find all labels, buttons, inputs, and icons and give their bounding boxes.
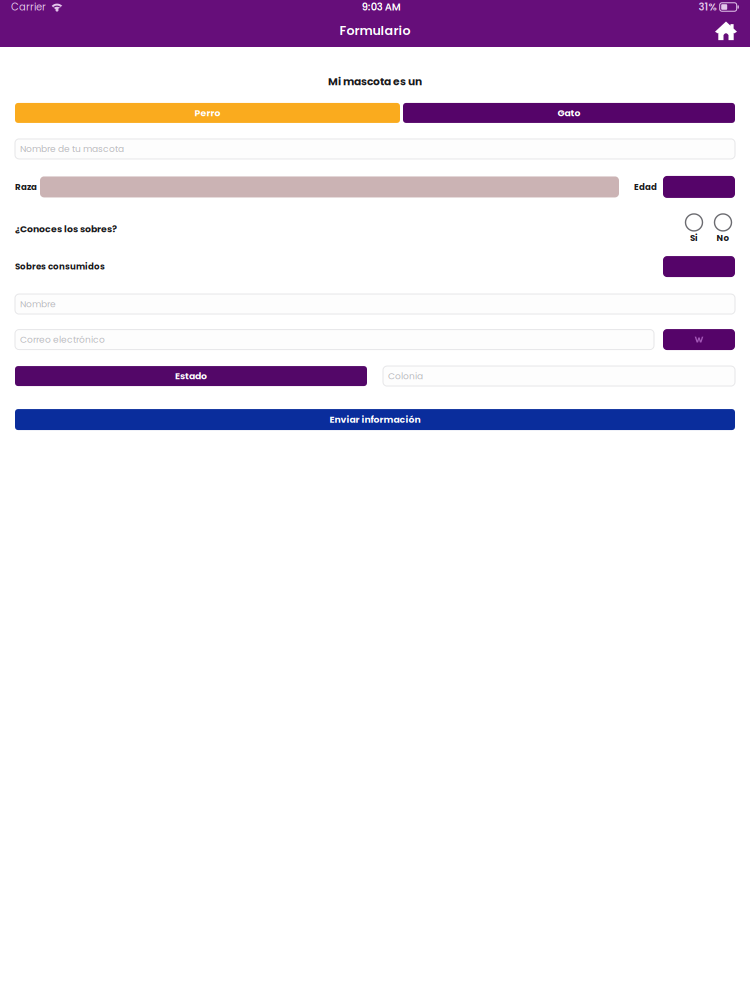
staticText: 9:03 AM bbox=[362, 0, 401, 14]
staticText: Enviar información bbox=[329, 413, 420, 426]
staticText: Correo electrónico bbox=[20, 333, 105, 346]
button[interactable]: Perro bbox=[15, 103, 400, 123]
staticText: Carrier bbox=[11, 0, 46, 14]
staticText: No bbox=[716, 232, 729, 244]
staticText: Perro bbox=[194, 106, 220, 119]
staticText: 31% bbox=[698, 0, 716, 14]
staticText: Nombre de tu mascota bbox=[20, 143, 124, 155]
button[interactable]: Edad bbox=[663, 176, 735, 198]
staticText: Mi mascota es un bbox=[328, 74, 422, 89]
button[interactable]: Sobres consumidos bbox=[663, 256, 735, 277]
button[interactable]: Correo electrónico bbox=[15, 330, 654, 350]
staticText: Formulario bbox=[339, 22, 410, 39]
button[interactable]: Adjuntar bbox=[663, 329, 735, 350]
button[interactable]: Gato bbox=[403, 103, 735, 123]
staticText: Nombre bbox=[20, 298, 56, 310]
button[interactable]: Estado bbox=[15, 366, 367, 386]
staticText: Edad bbox=[634, 181, 657, 193]
staticText: Gato bbox=[557, 106, 580, 119]
staticText: Colonia bbox=[388, 370, 423, 382]
button[interactable]: No bbox=[711, 214, 735, 244]
button[interactable]: Nombre bbox=[15, 294, 735, 314]
staticText: ¿Conoces los sobres? bbox=[15, 222, 117, 236]
staticText: Sobres consumidos bbox=[15, 260, 105, 273]
button[interactable]: Home bbox=[715, 20, 737, 40]
staticText: Raza bbox=[15, 181, 37, 193]
staticText: Estado bbox=[175, 369, 207, 383]
button[interactable]: Si bbox=[682, 214, 706, 244]
button[interactable]: Nombre de tu mascota bbox=[15, 139, 735, 159]
button[interactable]: Colonia bbox=[383, 366, 735, 386]
button[interactable]: Enviar información bbox=[15, 409, 735, 430]
staticText: Si bbox=[690, 232, 698, 244]
